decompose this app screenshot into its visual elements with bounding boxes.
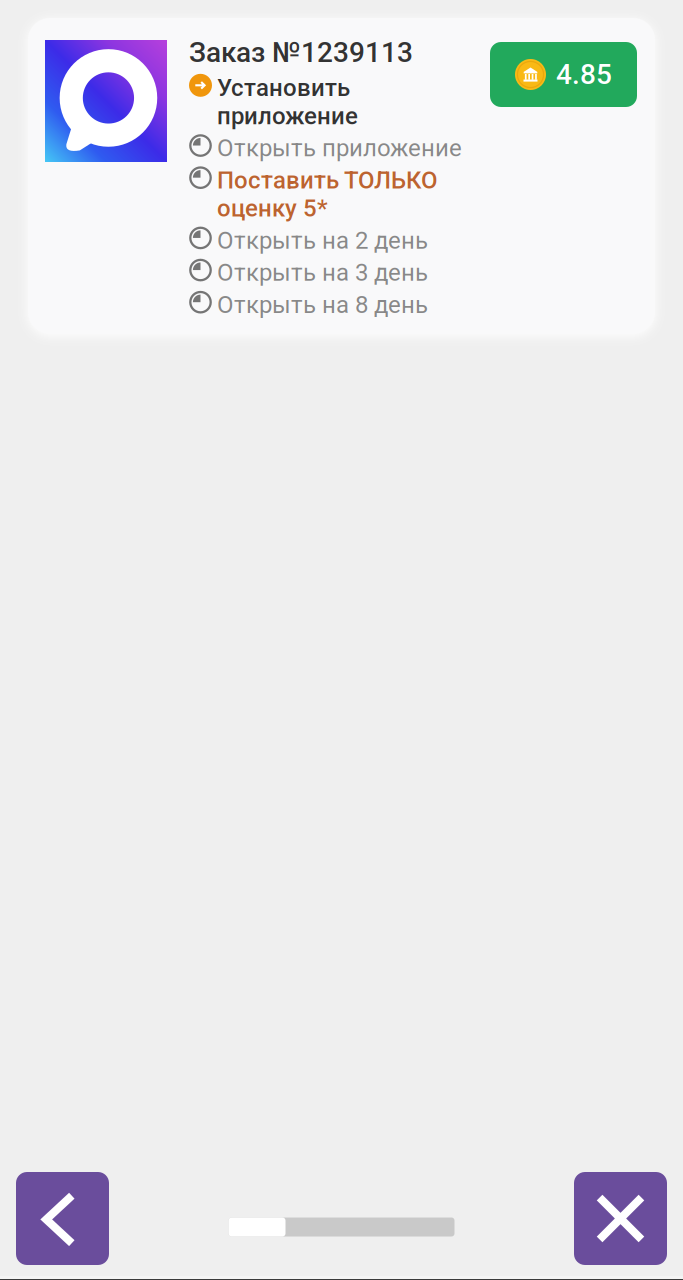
staticText: Открыть на 3 день [217,259,428,287]
button[interactable]: Открыть на 3 день [189,259,467,287]
button[interactable]: Reward 4.85 [490,42,637,107]
button[interactable]: Back [16,1172,109,1265]
staticText: Установить приложение [217,74,358,130]
staticText: Открыть приложение [217,134,462,162]
button[interactable]: Поставить ТОЛЬКО оценку 5* [189,166,467,222]
staticText: 4.85 [556,58,612,91]
button[interactable]: Close [574,1172,667,1265]
staticText: Поставить ТОЛЬКО оценку 5* [217,166,438,222]
staticText: Заказ №1239113 [189,36,413,69]
staticText: Открыть на 8 день [217,291,428,319]
button[interactable]: Открыть на 2 день [189,226,467,254]
button[interactable]: Открыть приложение [189,134,467,162]
staticText: Открыть на 2 день [217,226,428,254]
button[interactable]: Открыть на 8 день [189,291,467,319]
button[interactable]: Установить приложение [189,74,467,130]
